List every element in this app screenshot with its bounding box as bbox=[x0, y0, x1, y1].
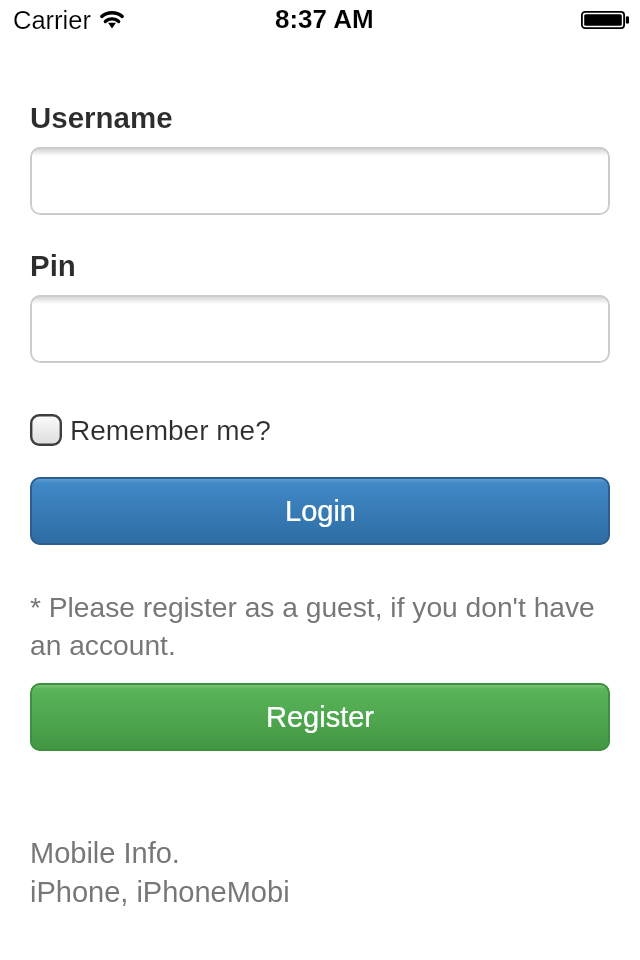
other: Battery full bbox=[581, 11, 629, 29]
staticText: * Please register as a guest, if you don… bbox=[30, 591, 614, 661]
staticText: Login bbox=[285, 495, 356, 527]
button[interactable]: Register bbox=[30, 683, 610, 751]
staticText: 8:37 AM bbox=[275, 4, 374, 33]
staticText: Remember me? bbox=[70, 415, 271, 446]
button[interactable]: Login bbox=[30, 477, 610, 545]
staticText: Mobile Info. bbox=[30, 837, 180, 869]
button[interactable]: Remember me checkbox bbox=[30, 414, 271, 446]
other: Remember me checkbox bbox=[30, 414, 62, 446]
staticText: iPhone, iPhoneMobi bbox=[30, 876, 290, 908]
staticText: Username bbox=[30, 101, 173, 134]
staticText: Register bbox=[266, 701, 374, 733]
button[interactable] bbox=[30, 295, 610, 363]
staticText: Pin bbox=[30, 249, 76, 282]
button[interactable] bbox=[30, 147, 610, 215]
staticText: Carrier bbox=[13, 6, 91, 34]
other: Wi-Fi signal bbox=[99, 8, 125, 29]
